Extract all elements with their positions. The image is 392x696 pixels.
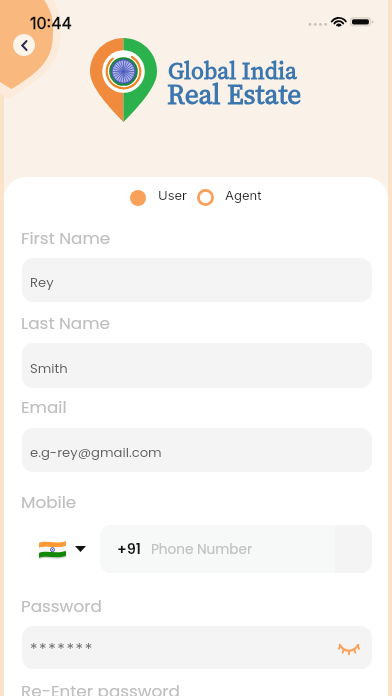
staticText: Rey — [30, 273, 54, 291]
staticText: Email — [21, 395, 67, 419]
staticText: User — [158, 187, 188, 203]
staticText: Smith — [30, 359, 68, 377]
staticText: e.g-rey@gmail.com — [30, 443, 162, 461]
button[interactable]: Agent — [197, 189, 262, 206]
staticText: Last Name — [21, 311, 110, 335]
staticText: Global India — [168, 55, 297, 87]
button[interactable]: Select country code — [18, 525, 93, 573]
staticText: 10:44 — [30, 13, 72, 32]
button[interactable]: ******* — [22, 626, 372, 669]
staticText: ******* — [30, 639, 94, 657]
button[interactable]: +91 — [100, 525, 372, 573]
button[interactable]: Smith — [22, 343, 372, 388]
staticText: Real Estate — [167, 76, 302, 114]
button[interactable]: Rey — [22, 258, 372, 302]
button[interactable]: User — [130, 190, 188, 206]
staticText: Agent — [225, 187, 262, 203]
staticText: +91 — [117, 539, 142, 559]
staticText: First Name — [21, 226, 111, 250]
button[interactable]: Back — [13, 34, 35, 56]
staticText: Phone Number — [151, 540, 252, 559]
staticText: Mobile — [21, 490, 77, 514]
button[interactable]: e.g-rey@gmail.com — [22, 428, 372, 472]
staticText: Re-Enter password — [21, 679, 180, 696]
staticText: Password — [21, 594, 102, 618]
